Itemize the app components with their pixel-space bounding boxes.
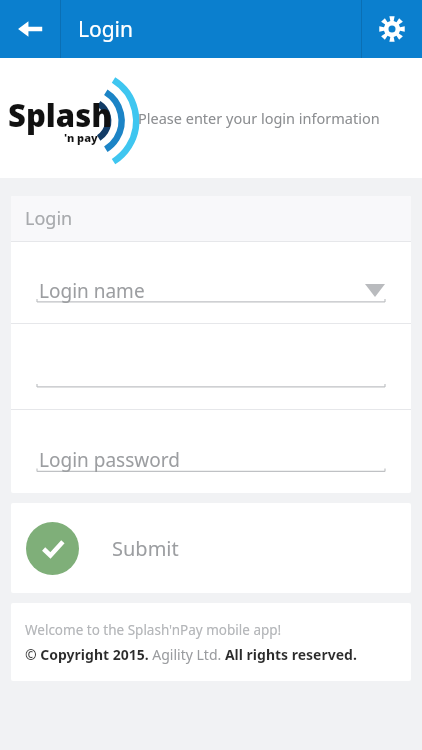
button[interactable]: Back xyxy=(0,0,60,58)
staticText: 'n pay xyxy=(64,130,98,145)
staticText: Login xyxy=(78,15,134,44)
button[interactable]: Login name xyxy=(11,242,411,323)
staticText: Please enter your login information belo… xyxy=(138,108,422,128)
button[interactable]: Settings xyxy=(361,0,422,58)
staticText: Login name xyxy=(39,278,145,304)
button[interactable]: Login password xyxy=(11,410,411,493)
staticText: © Copyright 2015. Agility Ltd. All right… xyxy=(25,645,357,664)
staticText: Login xyxy=(25,206,73,231)
staticText: Login password xyxy=(39,447,180,473)
button[interactable] xyxy=(11,324,411,409)
button[interactable]: Submit xyxy=(11,503,411,593)
staticText: Splash xyxy=(8,94,112,136)
staticText: Submit xyxy=(112,535,179,562)
staticText: Welcome to the Splash'nPay mobile app! xyxy=(25,621,282,639)
